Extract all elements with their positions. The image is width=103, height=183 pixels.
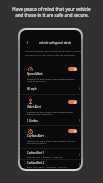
staticText: 60 mph [27,87,37,91]
button[interactable]: 60 mph [20,86,81,91]
staticText: and those in it are safe and secure. [15,12,89,18]
staticText: vehicle safeguard alerts [39,41,72,45]
staticText: Receive an alert when the vehicle exceed… [27,77,75,83]
staticText: Speed Alert [27,72,43,76]
button[interactable]: 1.0 miles [20,118,81,123]
staticText: Thu, Fri, Sat • 9:00 PM - 6:00 AM [27,156,63,159]
staticText: Add an intelligent alert to help you in … [25,50,81,57]
staticText: Curfew Alert 2 [27,161,45,165]
staticText: Curfew Alert [27,134,44,138]
button[interactable]: Back [25,40,30,45]
staticText: Receive an alert when the vehicle travel… [27,110,74,116]
button[interactable]: Curfew Alert 2 [20,160,81,169]
staticText: 1.0 miles [27,119,38,123]
staticText: Mon, Tue, Wed • 10:00 PM - 5:00 AM [27,166,67,169]
button[interactable]: Curfew Alert 1 [20,150,81,159]
staticText: Valet Alert [27,105,41,109]
button[interactable]: Toggle Speed Alert [68,67,77,71]
button[interactable]: Toggle Curfew Alert [68,129,77,133]
button[interactable]: Toggle Valet Alert [68,100,77,104]
staticText: Curfew Alert 1 [27,151,45,155]
staticText: Have peace of mind that your vehicle [12,6,91,12]
staticText: Receive an alert when the vehicle is dri… [27,139,76,145]
